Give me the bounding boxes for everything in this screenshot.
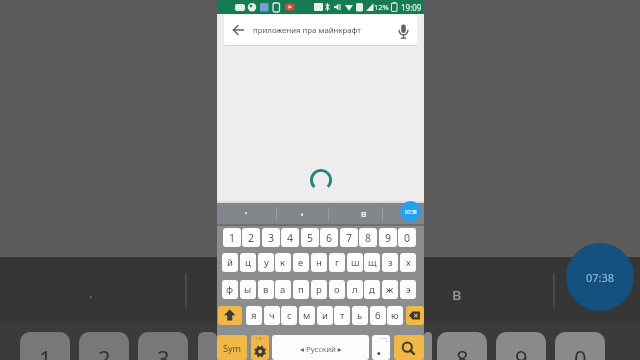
staticText: 19:09: [401, 2, 422, 13]
staticText: 12%: [374, 2, 389, 12]
staticText: ц: [245, 256, 251, 269]
button[interactable]: 7: [340, 228, 358, 247]
button[interactable]: [272, 335, 369, 360]
button[interactable]: [224, 15, 417, 45]
button[interactable]: 9: [379, 228, 397, 247]
button[interactable]: 07:38: [400, 201, 421, 222]
button[interactable]: 8: [359, 228, 377, 247]
button[interactable]: ы: [240, 280, 256, 299]
staticText: 7: [346, 231, 353, 245]
staticText: 6: [326, 231, 333, 245]
button[interactable]: ш: [347, 253, 363, 272]
button[interactable]: 3: [262, 228, 280, 247]
staticText: 1: [39, 343, 52, 360]
staticText: 0: [404, 231, 411, 245]
staticText: м: [303, 309, 311, 322]
staticText: 8: [365, 231, 372, 245]
staticText: .: [89, 284, 93, 302]
button[interactable]: т: [334, 306, 350, 325]
button[interactable]: 0: [398, 228, 416, 247]
button[interactable]: з: [382, 253, 398, 272]
button[interactable]: н: [311, 253, 327, 272]
staticText: Sym: [223, 342, 241, 354]
staticText: 2: [248, 231, 255, 245]
button[interactable]: ф: [222, 280, 238, 299]
staticText: ч: [269, 309, 275, 322]
button[interactable]: ж: [382, 280, 398, 299]
staticText: б: [375, 309, 381, 322]
staticText: .: [245, 204, 248, 216]
button[interactable]: и: [317, 306, 333, 325]
button[interactable]: б: [370, 306, 386, 325]
button[interactable]: а: [275, 280, 291, 299]
staticText: е: [298, 256, 304, 269]
button[interactable]: 2: [242, 228, 260, 247]
staticText: л: [352, 283, 358, 296]
button[interactable]: к: [275, 253, 291, 272]
button[interactable]: л: [347, 280, 363, 299]
button[interactable]: о: [329, 280, 345, 299]
staticText: н: [316, 256, 322, 269]
button[interactable]: с: [281, 306, 297, 325]
button[interactable]: [394, 335, 424, 360]
button[interactable]: ц: [240, 253, 256, 272]
staticText: г: [335, 256, 340, 269]
staticText: 9: [385, 231, 392, 245]
staticText: 3: [268, 231, 275, 245]
button[interactable]: х: [400, 253, 416, 272]
button[interactable]: [372, 335, 390, 360]
staticText: 9: [515, 343, 528, 360]
button[interactable]: 5: [301, 228, 319, 247]
staticText: 8: [456, 343, 469, 360]
button[interactable]: я: [246, 306, 262, 325]
staticText: 4: [287, 231, 294, 245]
staticText: й: [227, 256, 233, 269]
button[interactable]: ю: [387, 306, 403, 325]
staticText: т: [340, 309, 345, 322]
button[interactable]: [251, 335, 269, 360]
button[interactable]: [218, 306, 242, 325]
button[interactable]: в: [258, 280, 274, 299]
staticText: 1: [229, 231, 236, 245]
staticText: в: [263, 283, 269, 296]
staticText: ь: [357, 309, 363, 322]
staticText: с: [287, 309, 292, 322]
staticText: д: [369, 283, 375, 296]
button[interactable]: ч: [264, 306, 280, 325]
button[interactable]: й: [222, 253, 238, 272]
button[interactable]: г: [329, 253, 345, 272]
button[interactable]: 1: [223, 228, 241, 247]
staticText: 07:38: [586, 270, 615, 285]
button[interactable]: д: [364, 280, 380, 299]
button[interactable]: р: [311, 280, 327, 299]
button[interactable]: щ: [364, 253, 380, 272]
staticText: э: [406, 283, 411, 296]
staticText: о: [334, 283, 340, 296]
staticText: 5: [307, 231, 314, 245]
staticText: в: [452, 282, 462, 304]
staticText: х: [406, 256, 411, 269]
staticText: 07:38: [405, 209, 417, 215]
staticText: ы: [244, 283, 252, 296]
staticText: ш: [351, 256, 360, 269]
button[interactable]: э: [400, 280, 416, 299]
staticText: ф: [226, 283, 234, 296]
button[interactable]: м: [299, 306, 315, 325]
button[interactable]: 4: [281, 228, 299, 247]
button[interactable]: ь: [352, 306, 368, 325]
button[interactable]: [406, 306, 424, 325]
button[interactable]: 6: [320, 228, 338, 247]
staticText: и: [322, 309, 328, 322]
button[interactable]: п: [293, 280, 309, 299]
button[interactable]: у: [258, 253, 274, 272]
staticText: з: [388, 256, 393, 269]
button[interactable]: Sym: [217, 335, 247, 360]
staticText: п: [298, 283, 304, 296]
staticText: 2: [98, 343, 111, 360]
staticText: к: [280, 256, 286, 269]
staticText: ◂ Русский ▸: [300, 344, 342, 355]
staticText: р: [316, 283, 322, 296]
staticText: 0: [574, 343, 587, 360]
button[interactable]: е: [293, 253, 309, 272]
staticText: ю: [391, 309, 399, 322]
